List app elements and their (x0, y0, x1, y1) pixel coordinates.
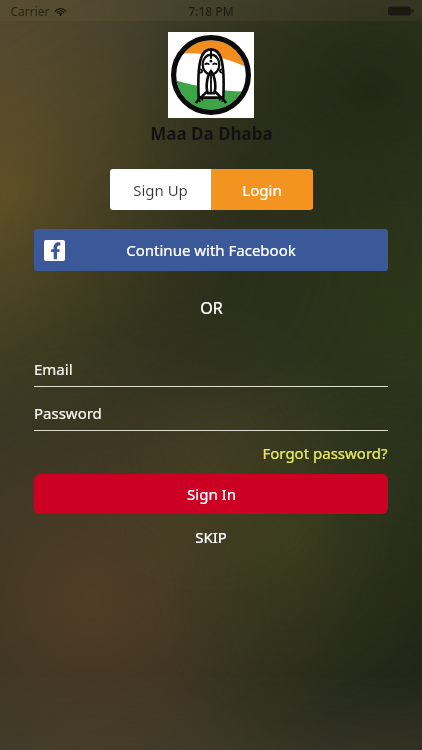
staticText: 7:18 PM (188, 3, 234, 19)
button[interactable]: Continue with Facebook (34, 229, 388, 271)
button[interactable]: Email (34, 359, 388, 387)
button[interactable]: Login (211, 169, 313, 210)
button[interactable]: Password (34, 403, 388, 431)
staticText: Email (34, 359, 388, 379)
staticText: Password (34, 403, 388, 423)
staticText: Sign Up (133, 180, 188, 200)
staticText: OR (200, 297, 223, 319)
staticText: Maa Da Dhaba (150, 122, 273, 145)
staticText: Carrier (10, 3, 50, 19)
staticText: Login (242, 180, 282, 200)
button[interactable]: Forgot password? (262, 443, 388, 463)
button[interactable]: Sign In (34, 474, 388, 514)
staticText: Sign In (187, 484, 236, 504)
button[interactable]: Sign Up (110, 169, 211, 210)
staticText: Forgot password? (262, 443, 388, 463)
staticText: SKIP (195, 527, 227, 547)
staticText: Continue with Facebook (126, 240, 296, 260)
button[interactable]: SKIP (181, 524, 241, 550)
